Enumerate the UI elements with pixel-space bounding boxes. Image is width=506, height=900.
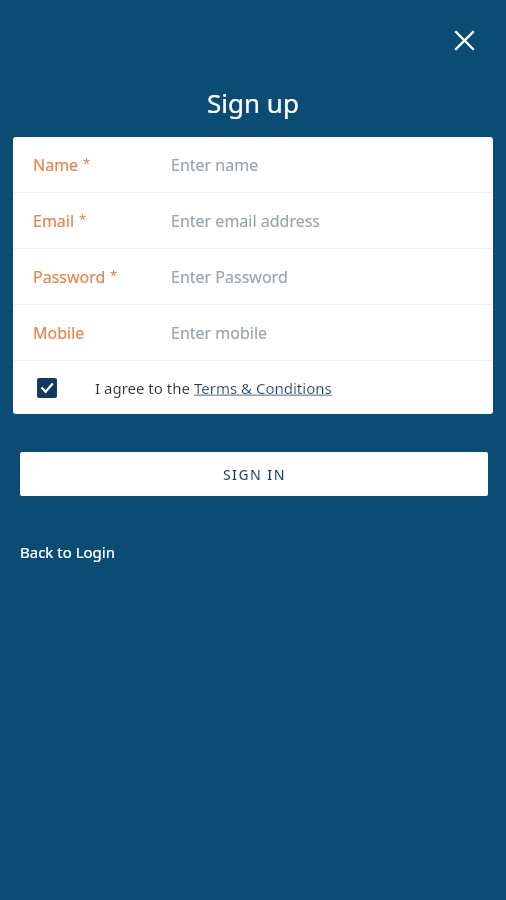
staticText: Name	[33, 154, 79, 176]
button[interactable]: Name	[13, 137, 493, 192]
button[interactable]: Terms & Conditions	[194, 378, 332, 398]
button[interactable]: I agree to the	[13, 361, 493, 414]
staticText: *	[110, 266, 118, 284]
staticText: Enter Password	[171, 266, 288, 288]
staticText: Enter mobile	[171, 322, 268, 344]
staticText: Enter email address	[171, 210, 321, 232]
staticText: Sign up	[207, 85, 299, 120]
staticText: Back to Login	[20, 542, 115, 562]
button[interactable]: SIGN IN	[20, 452, 488, 496]
staticText: *	[83, 154, 91, 172]
button[interactable]: Mobile	[13, 305, 493, 360]
button[interactable]: Password	[13, 249, 493, 304]
button[interactable]: Email	[13, 193, 493, 248]
staticText: Email	[33, 210, 75, 232]
staticText: Terms & Conditions	[194, 378, 332, 398]
button[interactable]: Close	[442, 18, 486, 62]
staticText: Mobile	[33, 322, 85, 344]
staticText: SIGN IN	[223, 465, 286, 484]
button[interactable]: Back to Login	[14, 536, 121, 568]
staticText: *	[79, 210, 87, 228]
staticText: I agree to the	[95, 378, 194, 398]
staticText: Password	[33, 266, 106, 288]
staticText: Enter name	[171, 154, 259, 176]
